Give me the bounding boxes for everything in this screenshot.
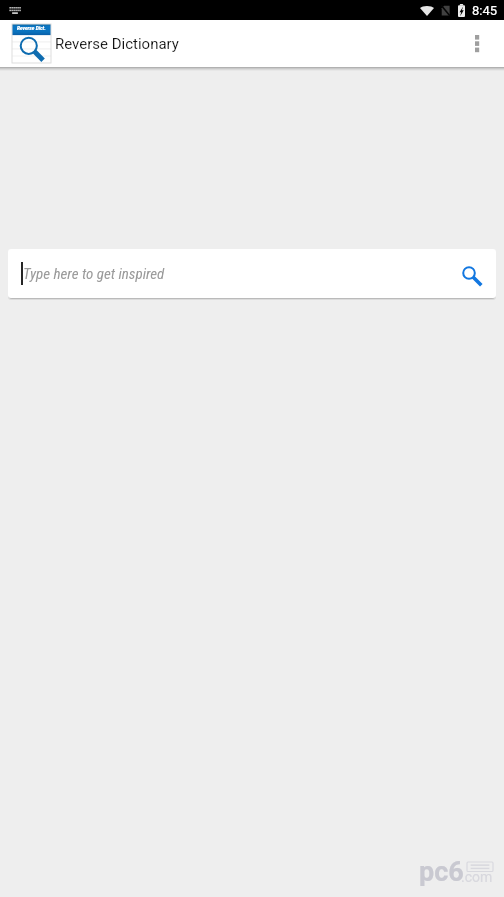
staticText: 8:45	[472, 3, 498, 18]
other: Reverse Dictionary app icon	[12, 24, 51, 63]
staticText: Reverse Dict.	[17, 25, 46, 32]
button[interactable]: Reverse Dictionary app icon	[0, 20, 191, 67]
staticText: pc6	[419, 856, 464, 886]
staticText: Reverse Dictionary	[55, 35, 179, 53]
staticText: .com	[461, 869, 493, 885]
button[interactable]: More options	[456, 20, 504, 67]
staticText: Type here to get inspired	[23, 265, 165, 283]
button[interactable]: Search	[448, 249, 496, 298]
button[interactable]: Type here to get inspired	[8, 249, 496, 298]
